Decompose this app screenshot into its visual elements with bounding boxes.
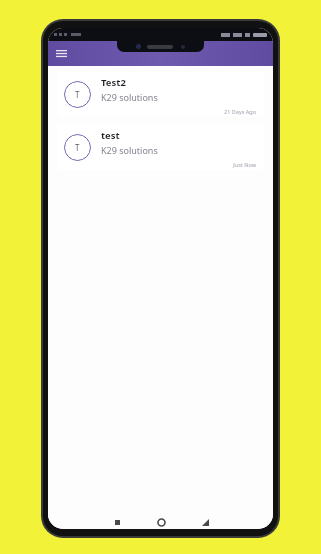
- button[interactable]: Recent apps: [106, 515, 128, 529]
- staticText: K29 solutions: [101, 144, 158, 156]
- staticText: Just Now: [101, 161, 256, 168]
- button[interactable]: T: [57, 72, 264, 117]
- staticText: T: [75, 89, 80, 100]
- staticText: test: [101, 129, 120, 142]
- button[interactable]: T: [57, 125, 264, 170]
- staticText: Test2: [101, 76, 126, 89]
- staticText: 21 Days Ago: [101, 108, 256, 115]
- button[interactable]: Menu: [51, 44, 71, 64]
- staticText: T: [75, 142, 80, 153]
- button[interactable]: Home: [150, 515, 172, 529]
- staticText: K29 solutions: [101, 91, 158, 103]
- button[interactable]: Back: [194, 515, 216, 529]
